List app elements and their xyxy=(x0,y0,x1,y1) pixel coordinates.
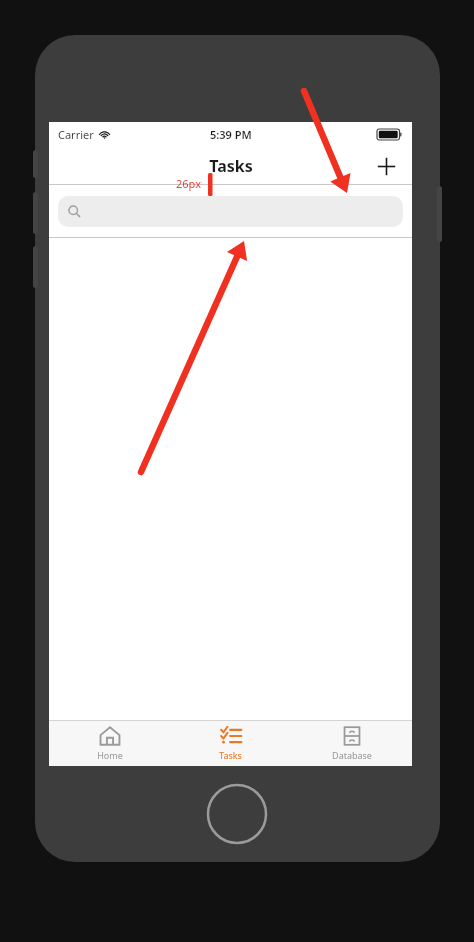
staticText: Tasks xyxy=(209,155,253,177)
staticText: Database xyxy=(332,749,372,761)
staticText: Tasks xyxy=(219,749,242,761)
button[interactable] xyxy=(58,196,403,227)
staticText: 26px xyxy=(176,176,201,191)
button[interactable]: Home xyxy=(49,720,170,766)
staticText: 5:39 PM xyxy=(210,127,252,142)
button[interactable]: Database xyxy=(291,720,412,766)
button[interactable]: Add task xyxy=(372,152,400,180)
staticText: Carrier xyxy=(58,127,94,142)
button[interactable]: Tasks xyxy=(170,720,291,766)
staticText: Home xyxy=(97,749,123,761)
